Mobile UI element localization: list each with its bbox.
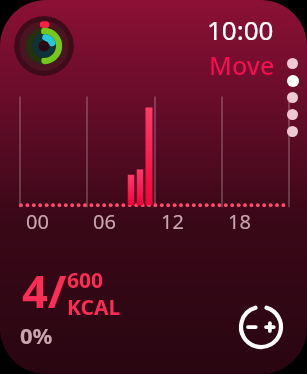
button[interactable]: Adjust goal — [236, 302, 286, 352]
staticText: KCAL — [67, 293, 121, 322]
staticText: 4/ — [22, 260, 67, 321]
staticText: Move — [209, 48, 275, 82]
staticText: 600 — [67, 266, 104, 295]
staticText: 12 — [161, 208, 184, 235]
button[interactable]: Activity rings — [14, 16, 74, 76]
staticText: 00 — [26, 208, 49, 235]
staticText: 10:00 — [207, 12, 274, 47]
staticText: 0% — [20, 320, 53, 350]
staticText: 18 — [228, 208, 251, 235]
staticText: 06 — [93, 208, 116, 235]
